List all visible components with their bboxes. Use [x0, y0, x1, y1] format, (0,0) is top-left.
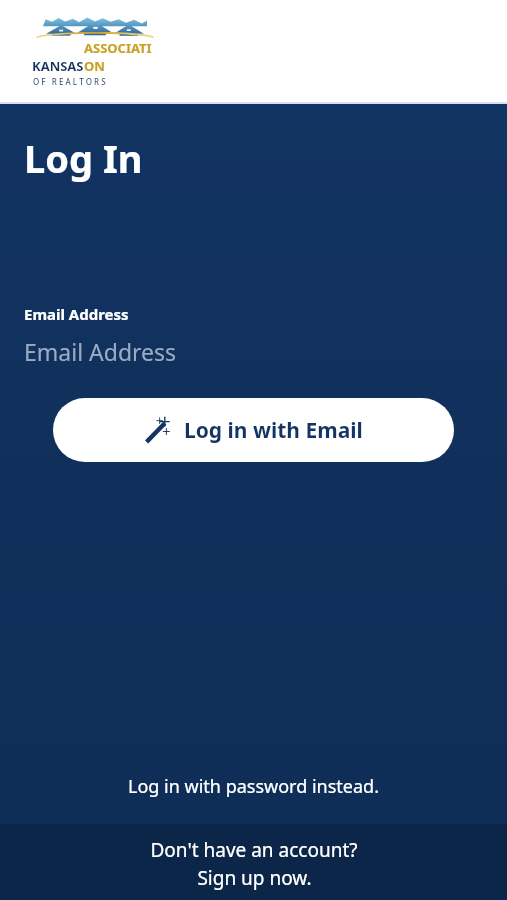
staticText: Email Address	[24, 304, 129, 324]
staticText: Log In	[24, 132, 143, 184]
button[interactable]: Email Address	[0, 336, 507, 370]
staticText: Don't have an account?	[150, 837, 358, 863]
button[interactable]: Magic login	[53, 398, 454, 462]
staticText: KANSAS	[32, 57, 84, 75]
staticText: O F R E A L T O R S	[33, 76, 106, 87]
staticText: Sign up now.	[197, 865, 312, 891]
staticText: Log in with password instead.	[128, 774, 379, 799]
staticText: Log in with Email	[184, 416, 363, 445]
other: Magic login	[144, 418, 170, 444]
staticText: Email Address	[24, 336, 177, 367]
button[interactable]: Log in with password instead.	[0, 758, 507, 814]
button[interactable]: Don't have an account?	[0, 824, 507, 900]
staticText: ASSOCIATION	[84, 39, 160, 75]
